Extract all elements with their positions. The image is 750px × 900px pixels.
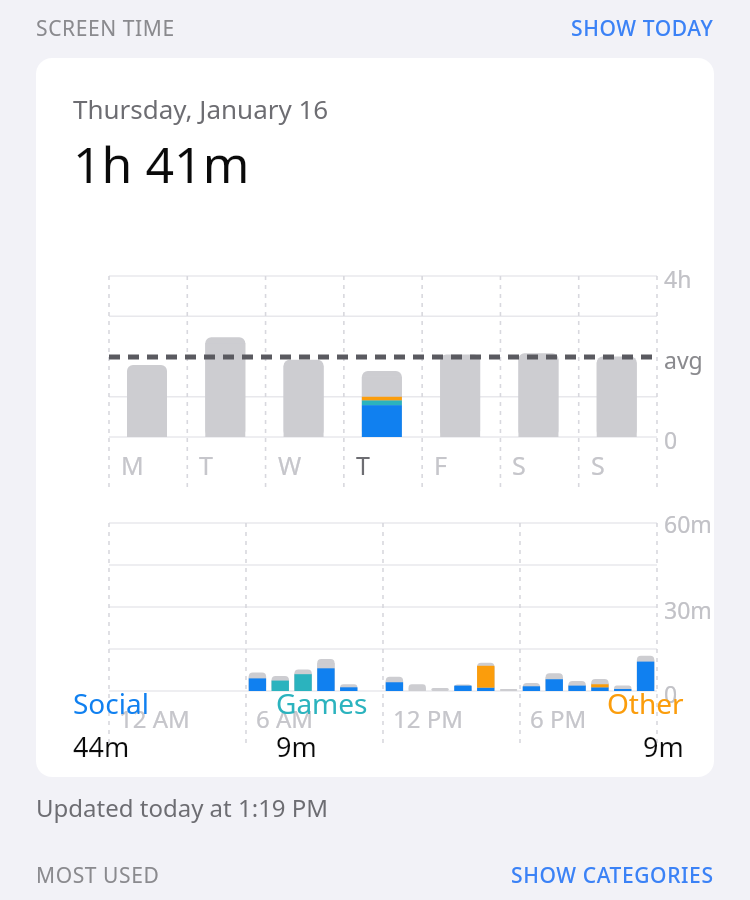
button[interactable]: SHOW CATEGORIES <box>511 861 714 890</box>
button[interactable]: SHOW TODAY <box>571 14 714 43</box>
staticText: SHOW CATEGORIES <box>511 861 714 890</box>
staticText: 0 <box>664 678 678 709</box>
button[interactable]: Games <box>276 684 480 765</box>
button[interactable]: Other <box>480 684 684 765</box>
staticText: T <box>356 448 370 482</box>
button[interactable]: Thursday, January 16 <box>36 58 714 777</box>
staticText: 9m <box>643 728 684 765</box>
staticText: 6 PM <box>530 702 587 735</box>
staticText: avg <box>664 344 703 375</box>
staticText: Social <box>73 684 149 722</box>
staticText: Other <box>607 684 684 722</box>
button[interactable]: Updated today at 1:19 PM <box>36 791 329 824</box>
staticText: 12 PM <box>393 702 463 735</box>
button[interactable]: Social <box>73 684 276 765</box>
staticText: T <box>199 448 213 482</box>
staticText: 30m <box>664 594 712 625</box>
staticText: M <box>121 448 144 482</box>
button[interactable]: MOST USED <box>36 861 160 890</box>
staticText: Updated today at 1:19 PM <box>36 791 329 824</box>
staticText: 12 AM <box>119 702 190 735</box>
staticText: SCREEN TIME <box>36 14 175 43</box>
staticText: F <box>434 448 447 482</box>
button[interactable]: SCREEN TIME <box>36 14 175 43</box>
staticText: SHOW TODAY <box>571 14 714 43</box>
staticText: W <box>278 448 302 482</box>
staticText: 6 AM <box>256 702 314 735</box>
staticText: 9m <box>276 728 317 765</box>
staticText: 60m <box>664 508 712 539</box>
staticText: Thursday, January 16 <box>73 91 329 126</box>
staticText: 0 <box>664 424 678 455</box>
staticText: S <box>591 448 605 482</box>
staticText: 4h <box>664 263 692 294</box>
staticText: Games <box>276 684 368 722</box>
staticText: S <box>512 448 526 482</box>
staticText: 44m <box>73 728 130 765</box>
staticText: MOST USED <box>36 861 160 890</box>
staticText: 1h 41m <box>73 130 250 198</box>
